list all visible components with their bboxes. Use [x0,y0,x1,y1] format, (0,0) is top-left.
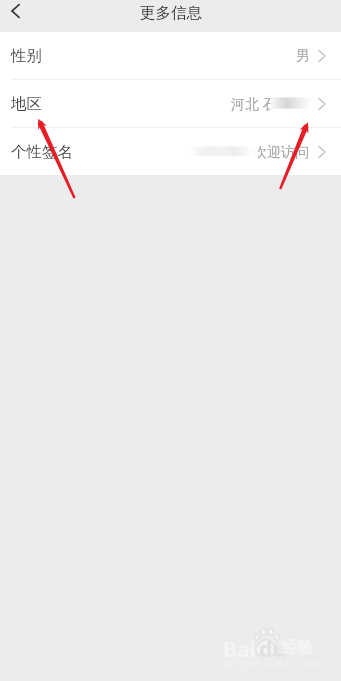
staticText: 河北 石家庄 [231,94,305,113]
button[interactable]: Back [0,0,30,21]
staticText: Bai [223,635,256,664]
staticText: 经验 [281,638,313,658]
staticText: du [259,635,286,664]
staticText: 更多信息 [140,3,202,23]
staticText: 性别 [11,46,42,66]
staticText: Paicom.cn 欢迎访问 [182,142,309,161]
staticText: 男 [296,47,310,65]
button[interactable]: 个性签名 [0,128,341,175]
staticText: 个性签名 [11,142,73,162]
button[interactable]: 地区 [0,80,341,127]
button[interactable]: 性别 [0,32,341,79]
staticText: 地区 [11,94,42,114]
